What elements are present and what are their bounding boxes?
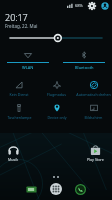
button[interactable]: Flugmodus bbox=[39, 77, 74, 100]
staticText: 68% bbox=[75, 3, 83, 8]
button[interactable]: Kein Dienst bbox=[1, 77, 37, 100]
button[interactable]: Device only bbox=[39, 100, 74, 123]
staticText: Taschenlampe bbox=[7, 115, 32, 120]
button[interactable]: Automatisch drehen bbox=[76, 77, 111, 100]
button[interactable]: Bildschirm übertragen bbox=[76, 100, 111, 123]
staticText: Musik bbox=[8, 157, 19, 162]
button[interactable]: Settings bbox=[87, 1, 96, 10]
staticText: Bluetooth bbox=[75, 65, 94, 70]
button[interactable]: Messages bbox=[25, 183, 38, 196]
button[interactable]: Musik bbox=[8, 145, 19, 162]
staticText: Kein Dienst bbox=[9, 92, 29, 97]
staticText: 20:17 bbox=[5, 11, 28, 23]
staticText: WLAN bbox=[22, 65, 34, 70]
button[interactable]: Taschenlampe bbox=[1, 100, 37, 123]
staticText: Play Store bbox=[87, 157, 104, 162]
staticText: Automatisch drehen bbox=[76, 92, 111, 97]
button[interactable]: WLAN bbox=[7, 48, 49, 74]
button[interactable]: Bluetooth bbox=[63, 48, 105, 74]
staticText: Freitag, 22. Mai bbox=[5, 23, 38, 29]
button[interactable]: Apps bbox=[49, 182, 63, 196]
button[interactable]: Brightness bbox=[10, 32, 102, 44]
button[interactable]: Play Store bbox=[87, 145, 104, 162]
staticText: Bildschirm übertragen bbox=[76, 115, 111, 120]
staticText: Device only bbox=[47, 115, 67, 120]
button[interactable]: User profile bbox=[100, 1, 109, 10]
button[interactable]: Phone bbox=[74, 183, 87, 196]
staticText: Flugmodus bbox=[47, 92, 66, 97]
